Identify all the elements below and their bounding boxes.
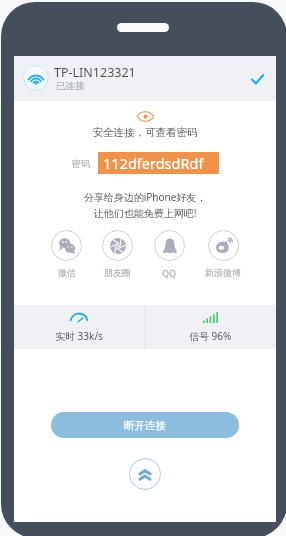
staticText: 分享给身边的iPhone好友， [14, 190, 276, 204]
staticText: 112dferdsdRdf [103, 153, 204, 173]
button[interactable]: 朋友圈 [102, 230, 133, 278]
button[interactable]: 112dferdsdRdf [98, 152, 219, 174]
staticText: 实时 33k/s [55, 329, 103, 343]
staticText: 信号 96% [189, 329, 232, 343]
staticText: 让他们也能免费上网吧! [14, 206, 276, 220]
button[interactable]: QQ [154, 230, 185, 279]
button[interactable]: 实时 33k/s [14, 305, 144, 349]
staticText: 已连接 [56, 80, 85, 92]
button[interactable]: 微信 [51, 230, 82, 278]
button[interactable]: 信号 96% [145, 305, 276, 349]
staticText: 微信 [58, 267, 76, 278]
button[interactable]: TP-LIN123321 [14, 56, 276, 101]
staticText: TP-LIN123321 [54, 64, 136, 81]
button[interactable]: 断开连接 [51, 412, 239, 438]
staticText: 安全连接，可查看密码 [14, 126, 276, 139]
button[interactable]: Expand [129, 458, 161, 490]
staticText: 新浪微博 [205, 267, 241, 278]
button[interactable]: Connected [246, 68, 268, 90]
staticText: QQ [162, 267, 177, 279]
button[interactable]: 新浪微博 [205, 230, 241, 278]
staticText: 密码 [72, 158, 90, 169]
button[interactable]: Show password [137, 111, 154, 122]
staticText: 断开连接 [124, 419, 166, 432]
staticText: 朋友圈 [104, 267, 131, 278]
